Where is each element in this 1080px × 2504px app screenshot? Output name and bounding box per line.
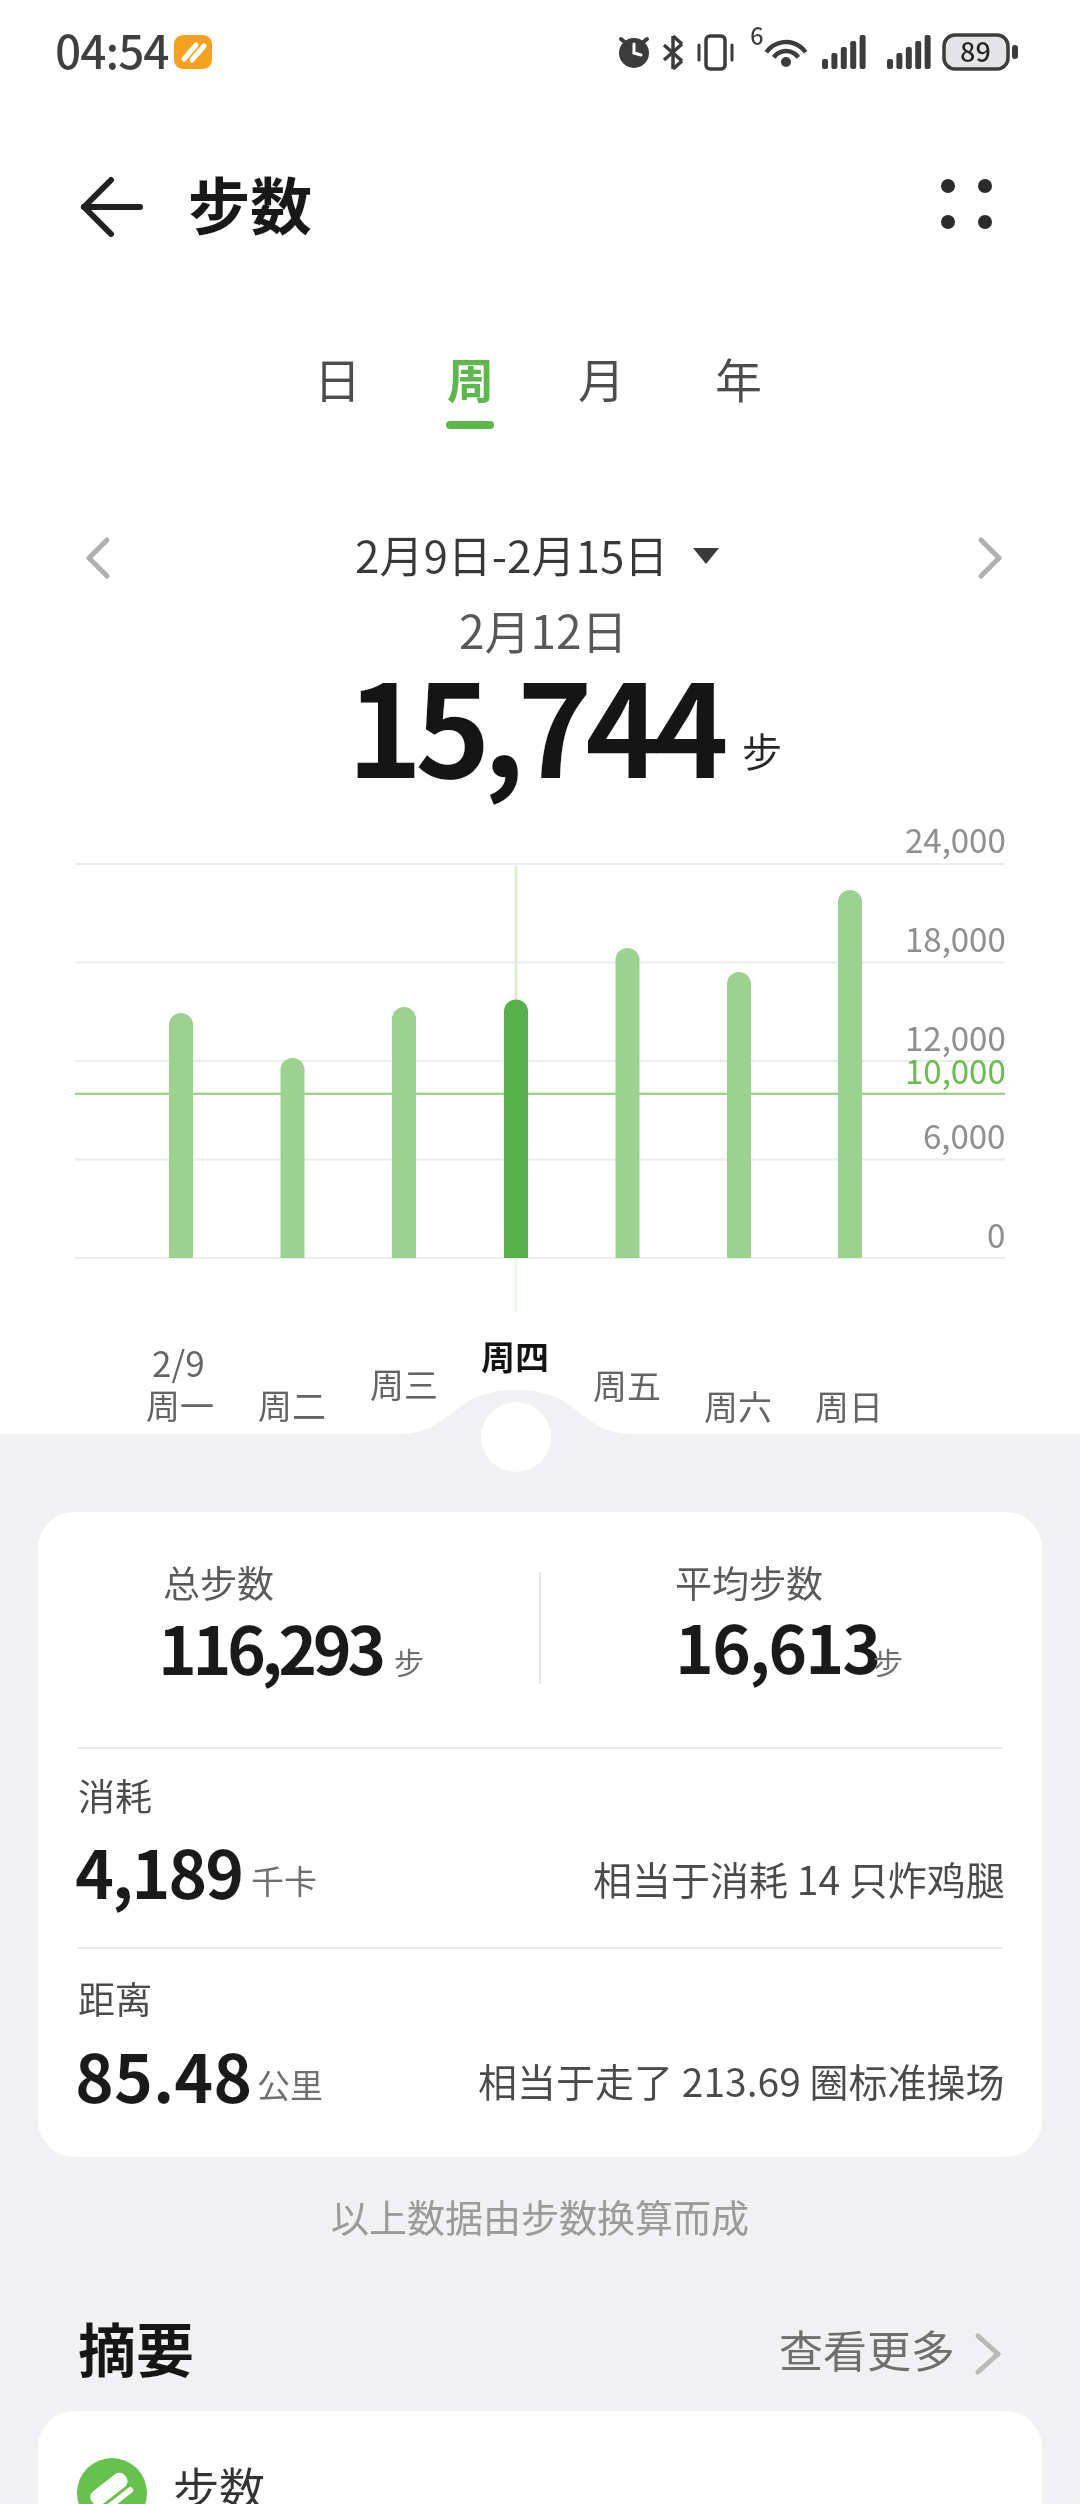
staticText: 步数 (188, 158, 313, 248)
staticText: 4,189 (75, 1822, 243, 1918)
staticText: 周五 (593, 1360, 661, 1409)
staticText: 6 (750, 17, 764, 52)
button[interactable] (38, 2411, 1042, 2504)
staticText: 18,000 (905, 914, 1006, 962)
staticText: 总步数 (163, 1555, 274, 1609)
staticText: 2月12日 (459, 596, 628, 663)
staticText: 6,000 (923, 1111, 1006, 1159)
button[interactable] (62, 527, 124, 589)
staticText: 步 (873, 1639, 903, 1682)
staticText: 摘要 (78, 2305, 195, 2389)
staticText: 步 (742, 721, 782, 779)
staticText: 16,613 (675, 1597, 880, 1693)
button[interactable] (38, 1512, 1042, 2157)
staticText: 85.48 (75, 2026, 253, 2122)
staticText: 千卡 (251, 1856, 317, 1904)
staticText: 116,293 (158, 1598, 382, 1694)
button[interactable] (330, 520, 750, 596)
staticText: 公里 (257, 2060, 323, 2108)
staticText: 24,000 (905, 815, 1006, 863)
staticText: 2月9日-2月15日 (355, 522, 669, 586)
staticText: 相当于消耗 14 只炸鸡腿 (593, 1850, 1005, 1906)
button[interactable] (588, 880, 668, 1260)
button[interactable] (810, 880, 890, 1260)
button[interactable] (60, 165, 152, 249)
staticText: 周六 (704, 1381, 772, 1430)
staticText: 距离 (78, 1971, 152, 2025)
staticText: 步 (394, 1639, 424, 1682)
staticText: 周日 (815, 1381, 883, 1430)
staticText: 周二 (258, 1380, 326, 1429)
staticText: 周四 (481, 1331, 549, 1380)
staticText: 2/9 (152, 1336, 205, 1387)
button[interactable] (141, 880, 221, 1260)
staticText: 月 (578, 343, 625, 411)
button[interactable] (770, 2310, 1020, 2395)
staticText: 10,000 (905, 1046, 1006, 1094)
staticText: 周一 (146, 1380, 214, 1429)
button[interactable] (956, 527, 1018, 589)
button[interactable] (364, 880, 444, 1260)
button[interactable] (253, 880, 333, 1260)
button[interactable]: 月 (551, 331, 651, 423)
staticText: 0 (987, 1210, 1006, 1258)
staticText: 消耗 (78, 1768, 152, 1822)
staticText: 步数 (173, 2453, 265, 2504)
staticText: 查看更多 (779, 2317, 955, 2381)
staticText: 平均步数 (675, 1555, 823, 1609)
button[interactable]: 年 (688, 331, 788, 423)
button[interactable]: 周 (420, 331, 520, 423)
staticText: 04:54 (55, 16, 169, 83)
staticText: 年 (715, 343, 762, 411)
staticText: 日 (314, 343, 361, 411)
button[interactable]: 日 (287, 331, 387, 423)
staticText: 89 (960, 31, 991, 70)
staticText: 12,000 (905, 1013, 1006, 1061)
button[interactable] (476, 880, 556, 1260)
staticText: 周 (447, 343, 494, 411)
staticText: 15,744 (347, 630, 722, 815)
staticText: 以上数据由步数换算而成 (331, 2188, 750, 2243)
staticText: 周三 (370, 1359, 438, 1408)
button[interactable] (699, 880, 779, 1260)
staticText: 相当于走了 213.69 圈标准操场 (478, 2052, 1005, 2108)
button[interactable] (916, 154, 1018, 256)
